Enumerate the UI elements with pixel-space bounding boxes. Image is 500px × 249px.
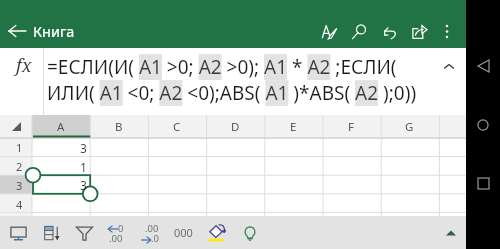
staticText: 000: [174, 225, 193, 240]
staticText: 1: [80, 159, 87, 175]
staticText: 3: [16, 178, 23, 193]
staticText: 4: [16, 197, 23, 212]
button[interactable]: Search: [344, 14, 374, 48]
button[interactable]: More options: [434, 14, 460, 48]
staticText: 1: [16, 140, 23, 155]
staticText: =ЕСЛИ(И( A1 >0; A2 >0); A1 * A2 ;ЕСЛИ(: [47, 54, 397, 80]
button[interactable]: Fill color: [200, 216, 233, 249]
staticText: ИЛИ( A1 <0; A2 <0);ABS( A1 )*ABS( A2 );0…: [47, 80, 417, 106]
button[interactable]: Ink: [314, 14, 344, 48]
button[interactable]: Back: [466, 36, 500, 95]
staticText: .0: [151, 232, 159, 245]
button[interactable]: Undo: [374, 14, 404, 48]
staticText: B: [115, 119, 123, 135]
button[interactable]: Freeze panes: [2, 216, 35, 249]
button[interactable]: Tell me: [233, 216, 266, 249]
staticText: 0: [118, 222, 124, 235]
staticText: 5: [16, 216, 23, 231]
button[interactable]: Home: [466, 95, 500, 154]
staticText: G: [405, 119, 414, 135]
staticText: Книга: [33, 21, 75, 41]
button[interactable]: Decrease decimal: [101, 216, 134, 249]
button[interactable]: Filter: [68, 216, 101, 249]
button[interactable]: Back: [0, 14, 34, 48]
staticText: C: [173, 119, 181, 135]
button[interactable]: Sort: [35, 216, 68, 249]
staticText: 3: [80, 140, 87, 156]
staticText: .00: [145, 222, 159, 235]
button[interactable]: Share: [404, 14, 434, 48]
staticText: E: [290, 119, 297, 135]
staticText: D: [231, 119, 240, 135]
staticText: .00: [109, 232, 123, 245]
staticText: 3: [80, 177, 87, 193]
button[interactable]: Expand: [436, 218, 466, 248]
button[interactable]: Comma style: [167, 216, 200, 249]
staticText: F: [348, 119, 354, 135]
staticText: A: [57, 119, 65, 135]
staticText: fx: [16, 53, 32, 78]
button[interactable]: Recents: [466, 154, 500, 213]
button[interactable]: Collapse formula bar: [435, 53, 463, 81]
button[interactable]: Increase decimal: [134, 216, 167, 249]
staticText: 2: [16, 159, 23, 174]
